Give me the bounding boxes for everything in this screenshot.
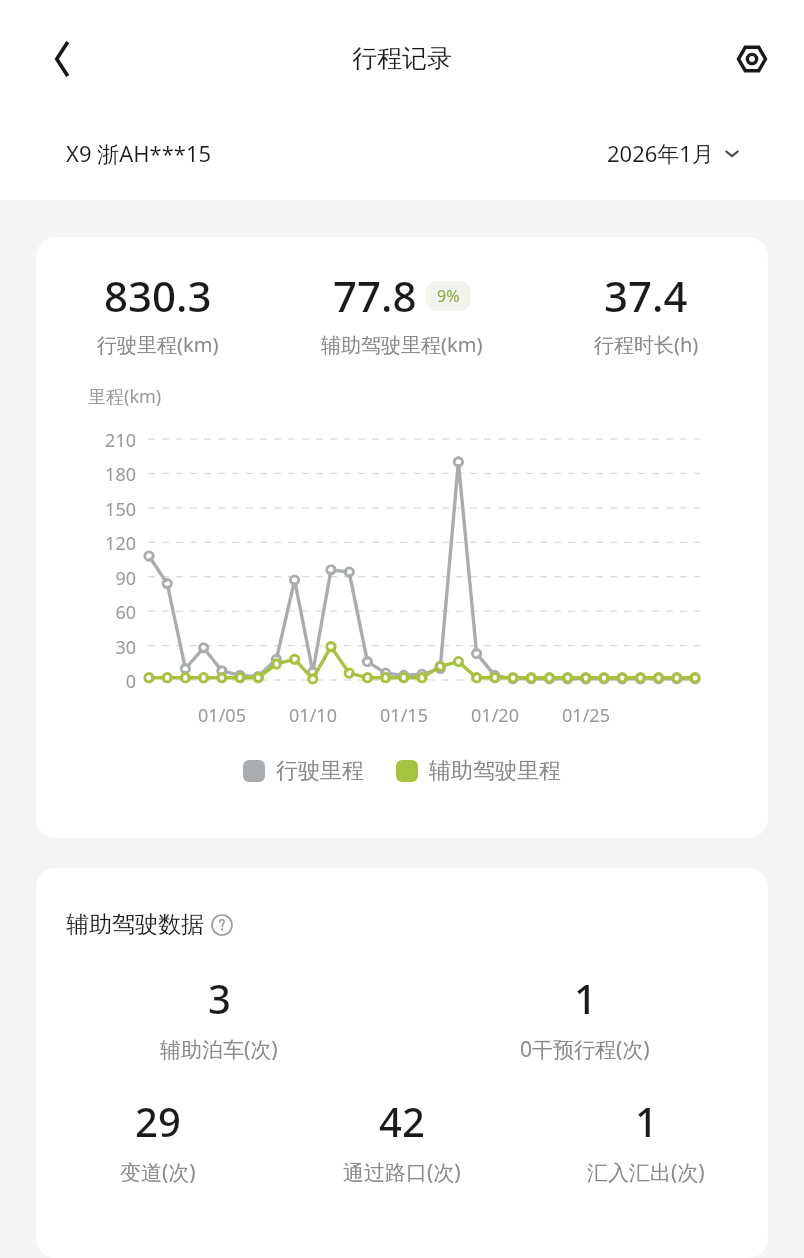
staticText: 60	[36, 600, 136, 625]
staticText: 1	[574, 971, 597, 1025]
staticText: 210	[36, 428, 136, 453]
button[interactable]: 行驶里程	[243, 757, 364, 785]
button[interactable]: 42	[280, 1094, 524, 1187]
button[interactable]: Back	[30, 28, 92, 90]
other: Help	[211, 914, 233, 936]
staticText: 通过路口(次)	[343, 1158, 461, 1187]
button[interactable]: 辅助驾驶数据	[66, 910, 233, 939]
staticText: 2026年1月	[607, 138, 714, 168]
staticText: 150	[36, 497, 136, 522]
button[interactable]: 辅助驾驶里程	[396, 757, 561, 785]
staticText: 1	[635, 1094, 658, 1148]
staticText: 830.3	[104, 267, 212, 324]
button[interactable]: 2026年1月	[607, 138, 742, 168]
staticText: 行程时长(h)	[594, 331, 699, 358]
button[interactable]: 29	[36, 1094, 280, 1187]
staticText: 180	[36, 462, 136, 487]
staticText: 120	[36, 531, 136, 556]
staticText: 汇入汇出(次)	[587, 1158, 705, 1187]
button[interactable]: 1	[524, 1094, 768, 1187]
staticText: 01/10	[277, 703, 349, 728]
staticText: 01/25	[550, 703, 622, 728]
staticText: 变道(次)	[120, 1158, 196, 1187]
button[interactable]: 1	[402, 971, 768, 1064]
staticText: 30	[36, 635, 136, 660]
staticText: 3	[208, 971, 231, 1025]
staticText: 辅助泊车(次)	[160, 1035, 278, 1064]
staticText: 行驶里程(km)	[97, 331, 219, 358]
staticText: 里程(km)	[88, 384, 162, 409]
staticText: X9 浙AH***15	[66, 138, 212, 168]
staticText: 辅助驾驶里程(km)	[321, 331, 483, 358]
staticText: 42	[379, 1094, 425, 1148]
staticText: 行驶里程	[276, 757, 364, 785]
staticText: 01/20	[459, 703, 531, 728]
staticText: 01/05	[186, 703, 258, 728]
staticText: 0	[36, 669, 136, 694]
staticText: 0干预行程(次)	[520, 1035, 650, 1064]
staticText: 行程记录	[352, 43, 452, 74]
button[interactable]: 3	[36, 971, 402, 1064]
staticText: 辅助驾驶数据	[66, 910, 204, 939]
staticText: 29	[135, 1094, 181, 1148]
staticText: 辅助驾驶里程	[429, 757, 561, 785]
staticText: 37.4	[604, 267, 688, 324]
button[interactable]: Settings	[724, 31, 780, 87]
staticText: 90	[36, 566, 136, 591]
staticText: 9%	[437, 285, 460, 307]
staticText: 77.8	[333, 267, 417, 324]
staticText: 01/15	[368, 703, 440, 728]
